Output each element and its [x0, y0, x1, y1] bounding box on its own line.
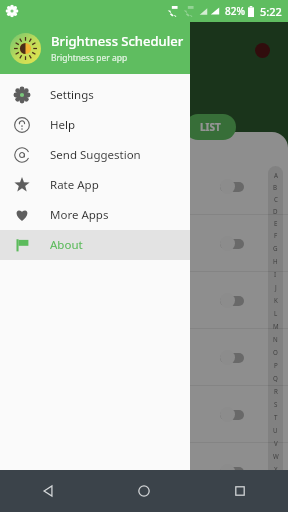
button[interactable]: Recents	[192, 470, 288, 512]
staticText: D	[273, 207, 278, 215]
staticText: Brightness per app	[51, 52, 128, 64]
staticText: L	[274, 309, 278, 317]
staticText: E	[274, 219, 278, 227]
staticText: Send Suggestion	[50, 147, 141, 163]
staticText: I	[274, 270, 277, 278]
staticText: A	[274, 171, 278, 179]
staticText: P	[274, 361, 278, 369]
staticText: R	[274, 387, 278, 395]
staticText: Brightness Scheduler	[51, 32, 184, 50]
staticText: V	[274, 439, 278, 447]
button[interactable]: Settings	[0, 80, 190, 110]
staticText: T	[274, 413, 278, 421]
button[interactable]: Send Suggestion	[0, 140, 190, 170]
button[interactable]: LIST	[185, 114, 236, 140]
button[interactable]: About	[0, 230, 190, 260]
staticText: B	[273, 183, 278, 191]
button[interactable]: Home	[96, 470, 192, 512]
button[interactable]: Help	[0, 110, 190, 140]
staticText: Rate App	[50, 177, 99, 193]
staticText: Settings	[50, 87, 94, 103]
button[interactable]: More Apps	[0, 200, 190, 230]
staticText: J	[275, 283, 277, 291]
staticText: Help	[50, 117, 76, 133]
staticText: W	[273, 452, 279, 460]
staticText: 82%	[225, 4, 245, 18]
staticText: Q	[273, 374, 278, 382]
staticText: 5:22	[260, 4, 282, 19]
staticText: N	[273, 335, 278, 343]
button[interactable]: Back	[0, 470, 96, 512]
staticText: O	[273, 348, 278, 356]
staticText: M	[273, 322, 279, 330]
staticText: About	[50, 237, 83, 253]
staticText: C	[274, 195, 278, 203]
button[interactable]: Rate App	[0, 170, 190, 200]
staticText: S	[274, 400, 278, 408]
staticText: G	[273, 244, 278, 252]
staticText: H	[273, 257, 278, 265]
staticText: LIST	[200, 120, 221, 134]
staticText: K	[274, 296, 278, 304]
staticText: More Apps	[50, 207, 109, 223]
staticText: U	[273, 426, 278, 434]
staticText: F	[274, 231, 278, 239]
staticText: X	[274, 465, 278, 473]
